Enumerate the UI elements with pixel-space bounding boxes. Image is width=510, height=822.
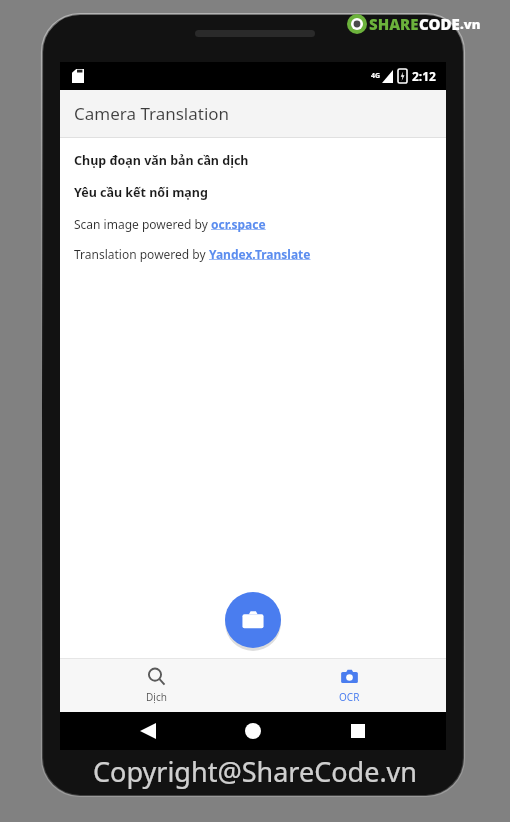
- staticText: Translation powered by: [74, 246, 209, 262]
- button[interactable]: Yandex.Translate: [209, 246, 311, 262]
- staticText: SHARE: [369, 14, 419, 34]
- button[interactable]: Take photo: [225, 592, 281, 648]
- staticText: Camera Translation: [74, 102, 230, 125]
- button[interactable]: ocr.space: [211, 216, 266, 232]
- staticText: Yêu cầu kết nối mạng: [74, 184, 208, 201]
- staticText: OCR: [339, 690, 360, 704]
- button[interactable]: Recents: [341, 714, 375, 748]
- staticText: Yandex.Translate: [209, 246, 311, 262]
- staticText: Copyright@ShareCode.vn: [93, 753, 418, 790]
- staticText: Chụp đoạn văn bản cần dịch: [74, 152, 249, 169]
- staticText: 4G: [371, 71, 381, 81]
- staticText: ocr.space: [211, 216, 266, 232]
- staticText: Scan image powered by: [74, 216, 211, 232]
- button[interactable]: OCR: [253, 659, 446, 712]
- staticText: .vn: [460, 15, 481, 33]
- button[interactable]: Home: [236, 714, 270, 748]
- button[interactable]: Dịch: [60, 659, 253, 712]
- staticText: CODE: [419, 14, 460, 34]
- staticText: 2:12: [412, 68, 436, 84]
- button[interactable]: Back: [131, 714, 165, 748]
- staticText: Dịch: [146, 690, 167, 704]
